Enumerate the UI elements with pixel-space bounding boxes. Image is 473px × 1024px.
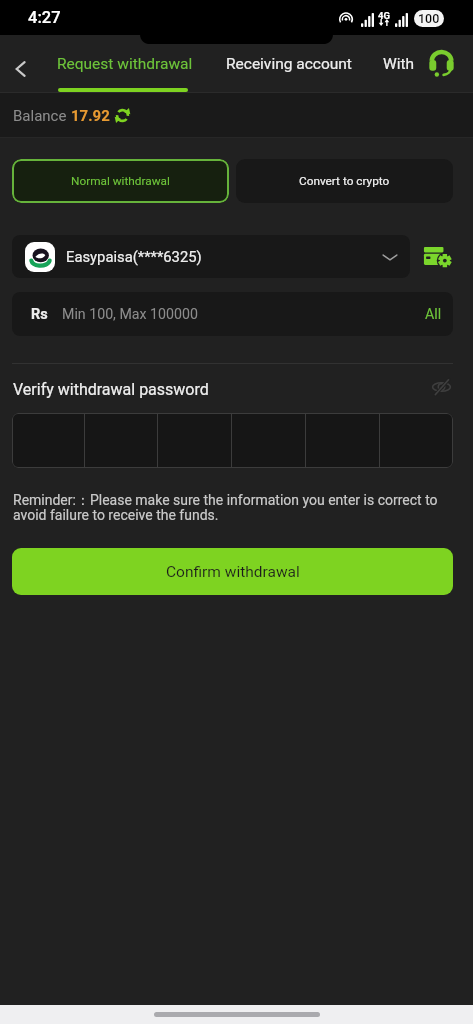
button[interactable]: Back — [0, 44, 42, 93]
staticText: 4:27 — [28, 8, 61, 27]
staticText: Easypaisa(****6325) — [66, 248, 202, 265]
staticText: Rs — [31, 306, 48, 323]
staticText: Reminder:：Please make sure the informati… — [13, 492, 438, 510]
button[interactable]: Receiving account — [214, 44, 364, 93]
button[interactable]: All — [415, 299, 453, 330]
button[interactable] — [380, 413, 453, 468]
staticText: Receiving account — [226, 55, 352, 73]
button[interactable]: Confirm withdrawal — [12, 548, 453, 595]
staticText: 100 — [418, 11, 440, 26]
staticText: With — [383, 55, 415, 73]
button[interactable]: Normal withdrawal — [12, 159, 229, 203]
button[interactable] — [85, 413, 157, 468]
button[interactable] — [158, 413, 231, 468]
staticText: All — [425, 306, 442, 323]
staticText: avoid failure to receive the funds. — [13, 507, 219, 523]
staticText: Normal withdrawal — [71, 174, 170, 188]
button[interactable] — [232, 413, 305, 468]
button[interactable] — [12, 413, 84, 468]
staticText: Confirm withdrawal — [166, 563, 300, 581]
staticText: 17.92 — [71, 107, 110, 125]
staticText: Balance — [13, 107, 71, 125]
staticText: Request withdrawal — [57, 55, 193, 73]
staticText: 4G — [378, 10, 390, 21]
button[interactable]: With — [371, 44, 427, 93]
staticText: Convert to crypto — [299, 174, 390, 188]
button[interactable]: Manage payment methods — [422, 242, 454, 270]
button[interactable] — [306, 413, 379, 468]
button[interactable]: Convert to crypto — [236, 159, 453, 203]
button[interactable]: Easypaisa(****6325) — [12, 235, 410, 278]
staticText: Min 100, Max 100000 — [62, 306, 198, 323]
button[interactable]: Request withdrawal — [45, 44, 205, 93]
button[interactable]: Customer support — [423, 46, 459, 82]
button[interactable]: Show password — [429, 375, 453, 399]
button[interactable]: Refresh balance — [113, 106, 132, 125]
staticText: Verify withdrawal password — [13, 380, 209, 399]
